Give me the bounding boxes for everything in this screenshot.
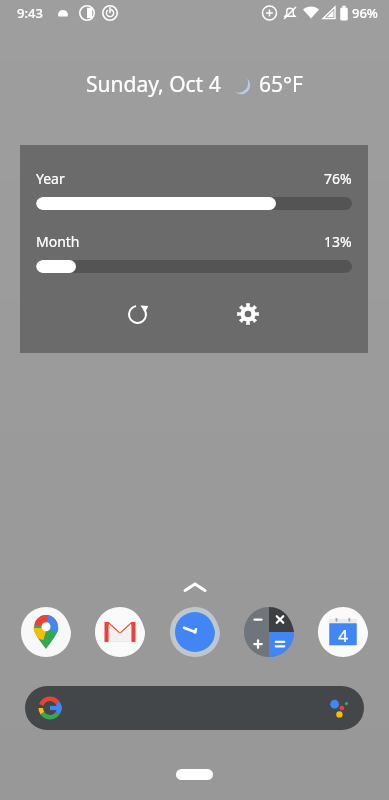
button[interactable]: Home [176,769,213,780]
staticText: 65°F [259,70,303,99]
staticText: Sunday, Oct 4 [86,70,221,99]
button[interactable]: Gmail [95,607,145,657]
staticText: 76% [324,169,352,188]
button[interactable]: Refresh [113,290,161,338]
staticText: 9:43 [17,4,43,22]
button[interactable]: Clock [170,607,220,657]
staticText: 13% [324,232,352,251]
button[interactable]: Maps [21,607,71,657]
button[interactable]: Search [25,686,364,730]
button[interactable]: All apps [177,578,213,596]
staticText: 4 [338,624,348,647]
staticText: Month [36,232,80,251]
staticText: Year [36,169,65,188]
button[interactable]: Settings [224,290,272,338]
button[interactable]: Sunday, Oct 4 [0,70,389,99]
staticText: 96% [352,4,378,22]
button[interactable]: Year [20,145,368,353]
button[interactable]: Calendar [318,607,368,657]
button[interactable]: Calculator [244,607,294,657]
